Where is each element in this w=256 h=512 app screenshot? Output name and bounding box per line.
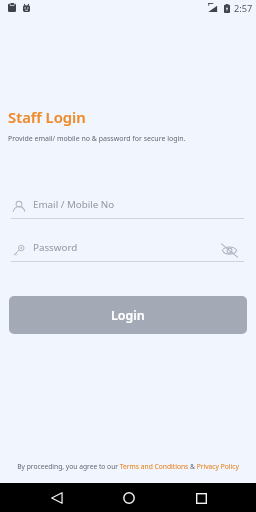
button[interactable]: Password [11, 237, 216, 263]
staticText: Email / Mobile No [33, 198, 115, 211]
button[interactable]: By proceeding, you agree to our Terms an… [17, 462, 239, 471]
button[interactable]: Recents [190, 487, 212, 509]
staticText: Login [111, 307, 145, 324]
button[interactable]: Email / Mobile No [11, 194, 244, 220]
button[interactable]: Login [9, 296, 247, 334]
staticText: Password [33, 241, 78, 254]
button[interactable]: Home [118, 487, 140, 509]
button[interactable]: Show password [219, 240, 240, 261]
button[interactable]: Back [46, 487, 68, 509]
staticText: Provide email/ mobile no & password for … [8, 134, 186, 144]
staticText: Staff Login [8, 107, 86, 127]
staticText: 2:57 [234, 2, 253, 15]
